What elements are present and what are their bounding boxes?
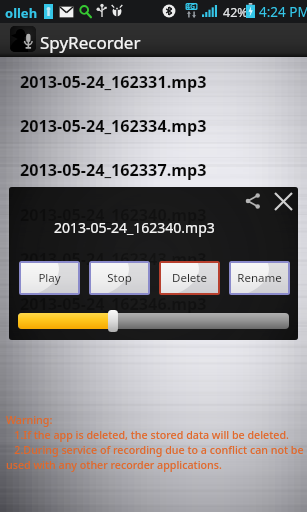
button[interactable]: 2013-05-24_162343.mp3 (0, 237, 307, 281)
staticText: 1.If the app is deleted, the stored data… (6, 428, 290, 443)
staticText: olleh (5, 4, 38, 22)
staticText: 2013-05-24_162334.mp3 (20, 115, 207, 137)
staticText: 42% (223, 4, 248, 21)
button[interactable]: Stop (91, 263, 148, 293)
button[interactable]: 2013-05-24_162331.mp3 (0, 60, 307, 104)
staticText: Rename (237, 270, 282, 286)
staticText: used with any other recorder application… (6, 458, 222, 473)
button[interactable]: Rename (231, 263, 288, 293)
staticText: 4:24 PM (259, 3, 307, 21)
button[interactable]: Delete (161, 263, 218, 293)
button[interactable]: 2013-05-24_162337.mp3 (0, 148, 307, 192)
staticText: SpyRecorder (40, 31, 141, 54)
staticText: 2.During service of recording due to a c… (6, 443, 304, 458)
staticText: 4G (186, 2, 196, 12)
staticText: 2013-05-24_162331.mp3 (20, 71, 207, 93)
staticText: Warning: (6, 413, 53, 428)
button[interactable]: Play (21, 263, 78, 293)
button[interactable]: Share (242, 190, 264, 212)
staticText: Play (38, 270, 61, 286)
staticText: 2013-05-24_162340.mp3 (54, 218, 215, 237)
button[interactable]: Seek position (18, 310, 289, 332)
staticText: 2013-05-24_162343.mp3 (20, 248, 207, 270)
button[interactable]: 2013-05-24_162346.mp3 (0, 282, 307, 326)
button[interactable]: 2013-05-24_162340.mp3 (0, 193, 307, 237)
staticText: Delete (172, 270, 207, 286)
staticText: Stop (107, 270, 132, 286)
staticText: 2013-05-24_162340.mp3 (20, 204, 207, 226)
staticText: 2013-05-24_162346.mp3 (20, 293, 207, 315)
button[interactable]: Close (272, 190, 294, 212)
button[interactable]: 2013-05-24_162334.mp3 (0, 104, 307, 148)
staticText: 2013-05-24_162337.mp3 (20, 159, 207, 181)
